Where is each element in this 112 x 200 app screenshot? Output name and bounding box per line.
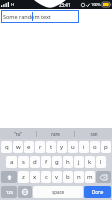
staticText: e	[27, 143, 31, 151]
staticText: v	[55, 173, 59, 181]
staticText: u	[71, 143, 75, 151]
staticText: c	[45, 173, 48, 181]
button[interactable]: d	[30, 156, 40, 168]
staticText: q	[5, 143, 9, 151]
button[interactable]: r	[35, 141, 45, 153]
button[interactable]: h	[63, 156, 73, 168]
staticText: g	[55, 158, 59, 166]
staticText: z	[22, 173, 25, 181]
button[interactable]: g	[52, 156, 62, 168]
staticText: j	[78, 158, 80, 166]
staticText: f	[45, 158, 48, 166]
button[interactable]: Some random text	[1, 10, 79, 23]
button[interactable]: i	[79, 141, 89, 153]
staticText: r	[39, 143, 42, 151]
button[interactable]: space	[33, 186, 83, 198]
button[interactable]: v	[52, 171, 62, 183]
staticText: l	[100, 158, 102, 166]
button[interactable]: p	[101, 141, 111, 153]
button[interactable]: "ra"	[0, 128, 36, 139]
staticText: d	[33, 158, 37, 166]
button[interactable]: z	[18, 171, 29, 183]
button[interactable]: n	[74, 171, 84, 183]
button[interactable]: 123	[1, 186, 17, 198]
staticText: b	[66, 173, 70, 181]
staticText: o	[93, 143, 97, 151]
staticText: 23:41	[59, 2, 71, 8]
button[interactable]: t	[46, 141, 56, 153]
staticText: ran	[90, 131, 98, 137]
staticText: n	[77, 173, 81, 181]
staticText: m	[87, 173, 93, 181]
button[interactable]: w	[13, 141, 23, 153]
staticText: 123	[6, 190, 13, 195]
button[interactable]: s	[18, 156, 29, 168]
button[interactable]: k	[85, 156, 95, 168]
button[interactable]: b	[63, 171, 73, 183]
staticText: x	[33, 173, 37, 181]
button[interactable]: a	[6, 156, 17, 168]
button[interactable]: j	[74, 156, 84, 168]
staticText: p	[104, 143, 108, 151]
button[interactable]: Done	[84, 186, 111, 198]
staticText: "ra"	[14, 131, 22, 137]
button[interactable]: x	[30, 171, 40, 183]
button[interactable]: u	[68, 141, 78, 153]
staticText: rare	[51, 131, 60, 137]
button[interactable]: f	[41, 156, 51, 168]
button[interactable]: q	[1, 141, 12, 153]
staticText: Some random text	[3, 13, 51, 20]
staticText: i	[83, 143, 85, 151]
staticText: h	[66, 158, 70, 166]
button[interactable]: l	[96, 156, 106, 168]
button[interactable]: Shift	[1, 171, 17, 183]
staticText: a	[10, 158, 14, 166]
button[interactable]: ran	[75, 128, 112, 139]
button[interactable]: o	[90, 141, 100, 153]
button[interactable]: e	[24, 141, 34, 153]
button[interactable]: y	[57, 141, 67, 153]
staticText: w	[16, 143, 21, 151]
staticText: t	[50, 143, 53, 151]
button[interactable]: Delete	[96, 171, 111, 183]
staticText: Done	[92, 189, 104, 195]
staticText: y	[60, 143, 64, 151]
button[interactable]: m	[85, 171, 95, 183]
staticText: k	[88, 158, 92, 166]
staticText: H	[11, 2, 14, 7]
staticText: s	[22, 158, 25, 166]
staticText: 100%	[91, 2, 101, 7]
staticText: space	[52, 189, 65, 195]
button[interactable]: Emoji keyboard	[18, 186, 32, 198]
button[interactable]: c	[41, 171, 51, 183]
button[interactable]: rare	[37, 128, 74, 139]
